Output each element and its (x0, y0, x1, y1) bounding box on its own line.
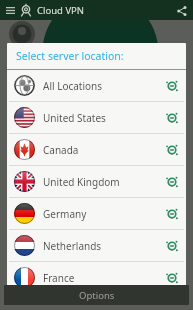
button[interactable]: Options (4, 285, 189, 305)
button[interactable]: United States (7, 102, 186, 133)
staticText: Cloud VPN (37, 4, 85, 17)
button[interactable]: Open navigation menu (3, 3, 18, 18)
staticText: Options (79, 289, 115, 302)
button[interactable]: France (7, 262, 186, 293)
staticText: All Locations (43, 79, 103, 93)
button[interactable]: Canada (7, 134, 186, 165)
staticText: Canada (43, 143, 79, 157)
staticText: United Kingdom (43, 175, 120, 189)
staticText: Germany (43, 207, 87, 221)
button[interactable]: Netherlands (7, 230, 186, 261)
button[interactable]: All Locations (7, 70, 186, 101)
staticText: France (43, 271, 75, 285)
staticText: United States (43, 111, 106, 125)
staticText: Netherlands (43, 239, 102, 253)
button[interactable]: United Kingdom (7, 166, 186, 197)
button[interactable]: Share (173, 2, 190, 19)
staticText: Select server location: (16, 49, 124, 63)
button[interactable]: Germany (7, 198, 186, 229)
